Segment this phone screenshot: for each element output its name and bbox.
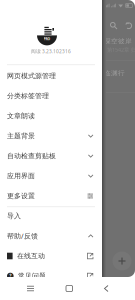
button[interactable]: 应用界面 <box>0 166 102 186</box>
button[interactable]: 网页模式源管理 <box>0 66 102 86</box>
staticText: 在线互动 <box>17 252 45 260</box>
staticText: 帮助/反馈 <box>7 231 38 241</box>
button[interactable]: Search <box>106 18 121 33</box>
staticText: 文章朗读 <box>7 112 35 120</box>
button[interactable]: Add book <box>111 250 133 272</box>
staticText: 网页模式源管理 <box>7 72 56 80</box>
staticText: 自动检查剪贴板 <box>7 152 56 160</box>
staticText: 更多设置 <box>7 192 35 200</box>
staticText: 分类标签管理 <box>7 92 49 100</box>
button[interactable]: 自动检查剪贴板 <box>0 146 102 166</box>
button[interactable]: 导入 <box>0 206 102 226</box>
staticText: 导入 <box>7 212 21 220</box>
staticText: 临渊行 <box>104 69 125 77</box>
staticText: 深空彼岸 <box>104 37 132 45</box>
staticText: ? <box>9 273 11 279</box>
staticText: 第1542章 归来 <box>107 46 135 53</box>
button[interactable]: 在线互动 <box>0 246 102 266</box>
button[interactable]: Back <box>99 280 113 296</box>
staticText: PRO <box>44 37 51 41</box>
button[interactable]: 分类标签管理 <box>0 86 102 106</box>
staticText: 常见问题 <box>18 272 46 280</box>
button[interactable]: 主题背景 <box>0 126 102 146</box>
button[interactable]: Recents <box>22 281 39 296</box>
button[interactable]: Home <box>61 280 77 296</box>
button[interactable]: Refresh <box>121 18 135 33</box>
button[interactable]: 文章朗读 <box>0 106 102 126</box>
button[interactable]: 帮助/反馈 <box>0 226 102 246</box>
staticText: 阅读 3.23.102316 <box>31 48 71 54</box>
button[interactable]: 更多设置 <box>0 186 102 206</box>
staticText: 主题背景 <box>7 132 35 140</box>
button[interactable]: ? <box>0 266 102 286</box>
staticText: 应用界面 <box>7 172 35 180</box>
